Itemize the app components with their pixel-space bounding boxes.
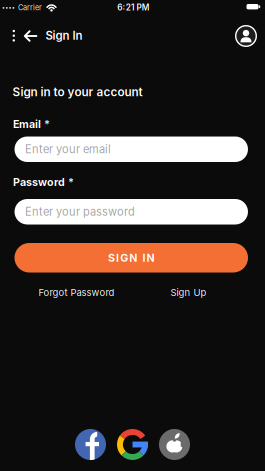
button[interactable]: Account [235,25,257,47]
staticText: * [68,175,74,188]
staticText: Email [13,117,44,130]
staticText: 6:21 PM [117,2,150,12]
staticText: Password [13,175,68,188]
button[interactable]: Sign Up [132,287,244,298]
button[interactable]: Back [23,28,38,44]
button[interactable]: Sign in with Google [117,429,148,460]
staticText: Enter your email [25,143,111,156]
staticText: SIGN IN [108,251,155,264]
button[interactable]: Menu [8,28,20,44]
button[interactable]: SIGN IN [14,243,248,272]
button[interactable]: Forgot Password [20,287,132,298]
staticText: Sign Up [170,287,206,298]
staticText: Enter your password [25,205,135,218]
staticText: Sign in to your account [12,85,142,99]
button[interactable]: Sign in with Apple [159,429,190,460]
staticText: Sign In [45,29,82,42]
button[interactable]: Email [14,136,248,162]
staticText: Forgot Password [38,287,114,298]
staticText: * [44,117,50,130]
staticText: Carrier [18,3,42,12]
button[interactable]: Password [14,199,248,224]
button[interactable]: Sign in with Facebook [75,429,106,460]
